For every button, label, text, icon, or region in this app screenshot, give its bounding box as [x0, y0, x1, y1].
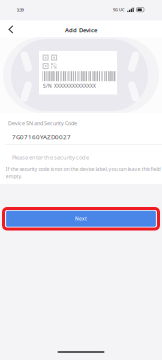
staticText: 7G07160YAZD0027	[12, 133, 71, 141]
staticText: Please enter the security code	[12, 153, 89, 161]
staticText: Add Device	[65, 26, 97, 34]
staticText: Device SN and Security Code	[8, 120, 77, 127]
staticText: 5G UC	[113, 7, 125, 12]
staticText: If the security code is not on the devic…	[5, 165, 160, 180]
staticText: 3:39	[17, 7, 24, 13]
button[interactable]: Next	[3, 208, 158, 229]
staticText: S/N XXXXXXXXXXXXXX	[43, 83, 96, 89]
button[interactable]: Back	[3, 20, 19, 38]
staticText: Next	[75, 215, 87, 222]
